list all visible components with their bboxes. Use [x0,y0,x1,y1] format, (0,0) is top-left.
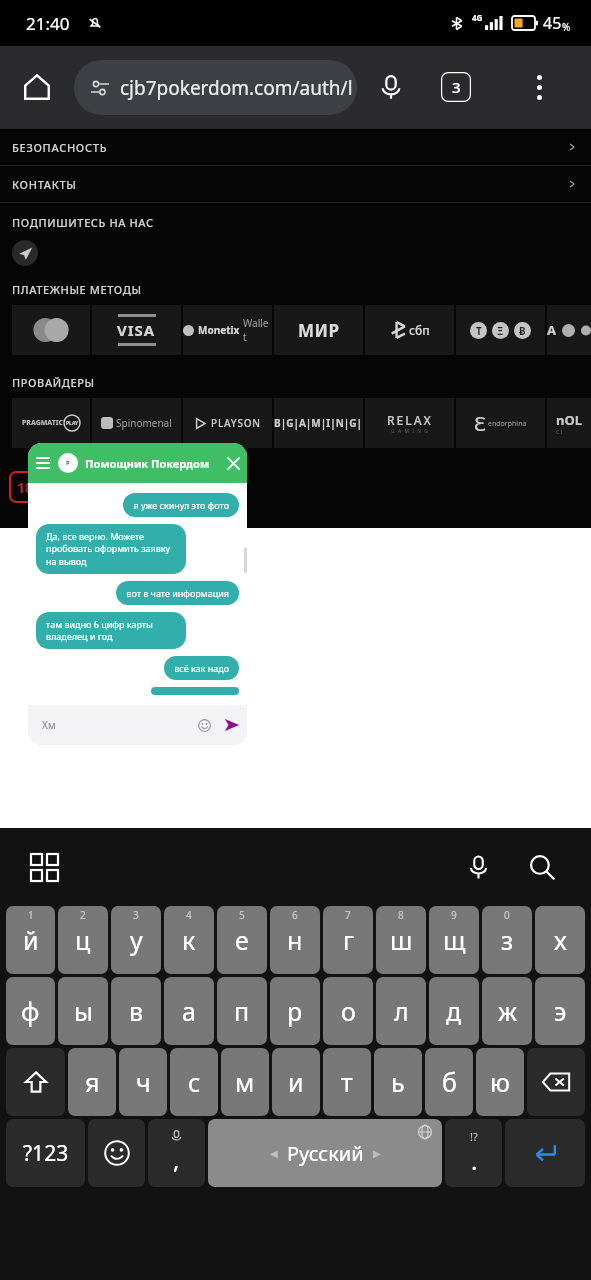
staticText: е [235,923,249,957]
button[interactable]: playson [183,398,272,448]
button[interactable]: н [270,906,320,974]
staticText: 5 [239,908,245,922]
staticText: 1 [28,908,34,922]
button[interactable]: и [272,1048,320,1116]
staticText: с [188,1065,201,1099]
button[interactable]: й [6,906,55,974]
staticText: х [554,923,567,957]
staticText: 8 [398,908,404,922]
button[interactable]: х [535,906,585,974]
staticText: к [182,923,196,957]
button[interactable]: Хм [28,705,247,745]
staticText: Ɛ [474,410,486,437]
button[interactable]: б [425,1048,473,1116]
button[interactable]: !? [445,1119,502,1187]
button[interactable]: relax [365,398,454,448]
button[interactable]: Enter [505,1119,585,1187]
button[interactable]: Send [217,710,247,740]
button[interactable]: д [429,977,479,1045]
button[interactable]: вот в чате информация [116,581,239,605]
staticText: A [547,321,556,339]
button[interactable]: endorphina [456,398,545,448]
button[interactable]: л [376,977,426,1045]
staticText: Да, все верно. Можете пробовать оформить… [46,530,176,568]
staticText: МИР [298,319,340,342]
button[interactable]: ы [58,977,108,1045]
button[interactable]: Telegram [12,240,38,266]
button[interactable]: Menu [28,443,247,483]
button[interactable]: visa [92,305,181,355]
button[interactable]: ц [58,906,108,974]
staticText: ш [390,923,413,957]
button[interactable]: всё как надо [164,656,239,680]
button[interactable]: nolimit [547,398,591,448]
staticText: ь [391,1065,405,1099]
staticText: % [562,20,571,34]
button[interactable]: у [111,906,161,974]
button[interactable]: щ [429,906,479,974]
button[interactable]: Backspace [527,1048,585,1116]
button[interactable]: е [217,906,267,974]
staticText: БЕЗОПАСНОСТЬ [12,140,108,155]
staticText: вот в чате информация [126,587,229,599]
button[interactable]: п [217,977,267,1045]
button[interactable]: bgaming [274,398,363,448]
button[interactable]: БЕЗОПАСНОСТЬ [0,129,591,165]
button[interactable]: Да, все верно. Можете пробовать оформить… [36,524,186,574]
button[interactable]: Shift [6,1048,65,1116]
button[interactable]: т [323,1048,371,1116]
button[interactable]: more [547,305,591,355]
staticText: !? [470,1129,478,1144]
button[interactable]: cjb7pokerdom.com/auth/l [74,60,357,115]
button[interactable]: ф [6,977,55,1045]
staticText: сбп [409,322,430,338]
staticText: cjb7pokerdom.com/auth/l [120,75,353,101]
button[interactable]: а [164,977,214,1045]
button[interactable]: м [221,1048,269,1116]
button[interactable]: Tabs: 3 [425,46,487,128]
button[interactable]: Emoji [88,1119,145,1187]
button[interactable]: spinomenal [92,398,181,448]
button[interactable]: КОНТАКТЫ [0,166,591,202]
button[interactable]: mir [274,305,363,355]
button[interactable]: ч [119,1048,167,1116]
button[interactable]: ю [476,1048,524,1116]
button[interactable]: с [170,1048,218,1116]
button[interactable]: Voice input [455,844,501,890]
button[interactable]: ◀ [208,1119,442,1187]
button[interactable]: там видно 6 цифр карты владелец и год [36,612,186,649]
button[interactable]: я [68,1048,116,1116]
button[interactable]: Emoji [191,712,217,738]
button[interactable]: з [482,906,532,974]
button[interactable]: Menu [28,448,58,478]
button[interactable]: в [111,977,161,1045]
button[interactable]: Keyboard options [26,849,62,885]
staticText: л [394,994,409,1028]
button[interactable]: pragmatic [12,398,90,448]
button[interactable]: , [148,1119,205,1187]
button[interactable]: ь [374,1048,422,1116]
button[interactable]: mc [12,305,90,355]
button[interactable]: sbp [365,305,454,355]
button[interactable]: ж [482,977,532,1045]
staticText: PLAYSON [211,416,261,430]
button[interactable]: Close [219,449,247,477]
button[interactable]: э [535,977,585,1045]
staticText: ?123 [23,1139,69,1168]
button[interactable]: р [270,977,320,1045]
button[interactable]: к [164,906,214,974]
button[interactable]: crypto [456,305,545,355]
button[interactable]: я уже скинул это фото [123,493,239,517]
button[interactable]: Home [0,46,74,128]
staticText: а [182,994,196,1028]
button[interactable]: Voice search [357,46,425,128]
button[interactable]: ш [376,906,426,974]
button[interactable]: г [323,906,373,974]
button[interactable]: monetix [183,305,272,355]
button[interactable]: More options [487,46,591,128]
button[interactable]: ?123 [6,1119,85,1187]
button[interactable]: Search [519,844,565,890]
button[interactable]: о [323,977,373,1045]
staticText: 2 [80,908,86,922]
button[interactable]: фото прав тоже [151,687,239,695]
